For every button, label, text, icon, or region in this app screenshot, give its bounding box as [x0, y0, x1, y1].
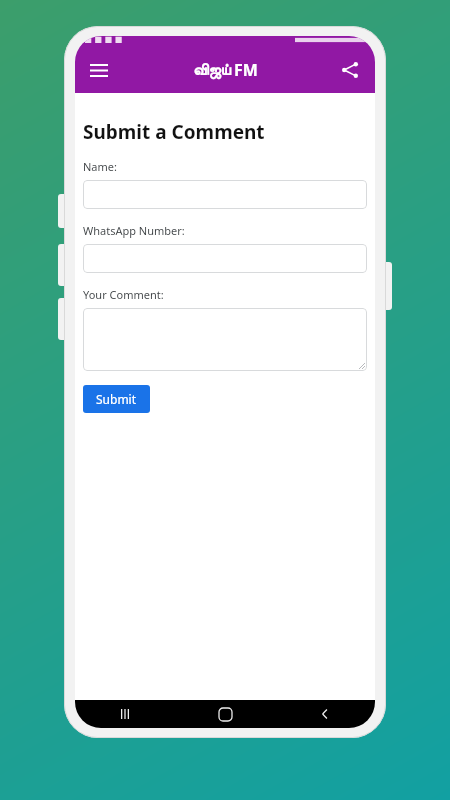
button[interactable]: Submit: [83, 385, 150, 413]
staticText: WhatsApp Number:: [83, 223, 185, 238]
button[interactable]: Back: [275, 700, 375, 728]
staticText: FM: [234, 59, 258, 81]
staticText: விஜய்: [193, 62, 231, 78]
button[interactable]: Text input field: [83, 180, 367, 209]
staticText: Your Comment:: [83, 287, 164, 302]
button[interactable]: Text input field: [83, 244, 367, 273]
button[interactable]: Open navigation menu: [81, 52, 117, 88]
button[interactable]: Text input field: [83, 308, 367, 371]
button[interactable]: Recent apps: [75, 700, 175, 728]
button[interactable]: Share: [332, 52, 368, 88]
staticText: Submit: [96, 391, 137, 407]
staticText: Name:: [83, 159, 117, 174]
staticText: Submit a Comment: [83, 119, 265, 145]
button[interactable]: Home: [175, 700, 275, 728]
